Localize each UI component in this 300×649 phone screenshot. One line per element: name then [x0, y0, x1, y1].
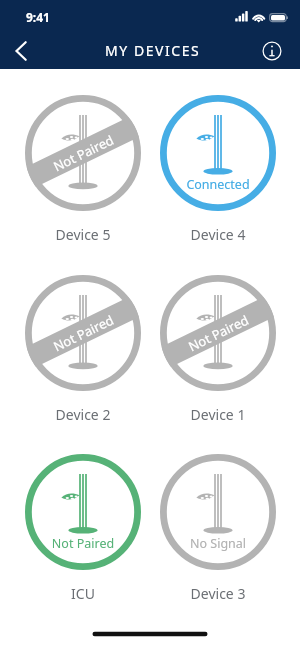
staticText: MY DEVICES — [105, 41, 201, 60]
staticText: Device 3 — [150, 584, 286, 603]
staticText: 9:41 — [26, 9, 50, 25]
staticText: Device 1 — [150, 405, 286, 424]
staticText: Device 5 — [15, 225, 151, 244]
button[interactable]: Back — [0, 32, 42, 69]
staticText: Not Paired — [185, 311, 252, 355]
staticText: Device 2 — [15, 405, 151, 424]
button[interactable]: Not Paired — [15, 271, 151, 431]
button[interactable]: Not Paired — [150, 271, 286, 431]
button[interactable]: Info — [252, 32, 300, 69]
staticText: ICU — [15, 584, 151, 603]
button[interactable]: Not Paired — [15, 91, 151, 251]
button[interactable]: Not Paired — [15, 450, 151, 610]
staticText: Not Paired — [15, 535, 151, 552]
staticText: No Signal — [150, 535, 286, 552]
staticText: Connected — [150, 176, 286, 193]
staticText: Device 4 — [150, 225, 286, 244]
button[interactable]: No Signal — [150, 450, 286, 610]
staticText: Not Paired — [50, 131, 117, 175]
staticText: Not Paired — [50, 311, 117, 355]
button[interactable]: Connected — [150, 91, 286, 251]
